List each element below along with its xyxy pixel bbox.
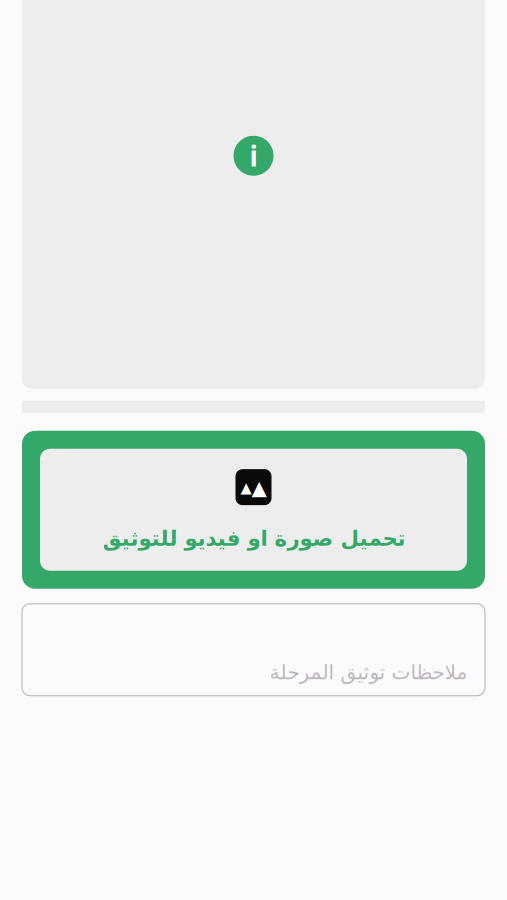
staticText: ملاحظات توثيق المرحلة bbox=[269, 661, 467, 684]
staticText: i bbox=[249, 137, 257, 174]
button[interactable]: ▲ bbox=[22, 431, 485, 589]
staticText: ▲ bbox=[251, 476, 266, 499]
staticText: ▲ bbox=[240, 479, 251, 496]
staticText: تحميل صورة او فيديو للتوثيق bbox=[102, 526, 405, 550]
button[interactable]: ملاحظات توثيق المرحلة bbox=[22, 604, 485, 696]
